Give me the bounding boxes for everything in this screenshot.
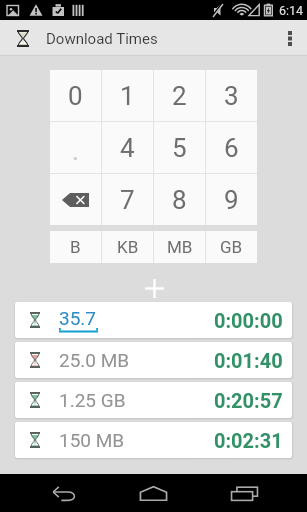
button[interactable]: B	[50, 231, 101, 263]
button[interactable]: 150 MB	[15, 422, 292, 458]
button[interactable]: 0	[50, 70, 101, 121]
button[interactable]: 4	[102, 122, 153, 173]
button[interactable]: 6	[206, 122, 257, 173]
staticText: .	[72, 136, 79, 166]
button[interactable]: Home	[125, 474, 181, 512]
button[interactable]: GB	[206, 231, 257, 263]
button[interactable]: 7	[102, 174, 153, 225]
staticText: 35.7	[59, 307, 97, 329]
staticText: KB	[117, 237, 139, 257]
staticText: 1.25 GB	[59, 389, 126, 411]
staticText: 1	[120, 81, 135, 111]
button[interactable]: KB	[102, 231, 153, 263]
staticText: 3	[224, 81, 239, 111]
staticText: 0:00:00	[214, 309, 283, 332]
staticText: 0	[68, 81, 83, 111]
button[interactable]: 5	[154, 122, 205, 173]
other: Backspace	[62, 193, 89, 207]
button[interactable]: 1	[102, 70, 153, 121]
staticText: 9	[224, 185, 239, 215]
staticText: MB	[167, 237, 193, 257]
staticText: 5	[172, 133, 187, 163]
button[interactable]: Add entry	[140, 274, 168, 302]
staticText: 2	[172, 81, 187, 111]
staticText: GB	[220, 237, 243, 257]
button[interactable]: 9	[206, 174, 257, 225]
staticText: 7	[120, 185, 135, 215]
button[interactable]: 25.0 MB	[15, 342, 292, 378]
button[interactable]: Back	[36, 474, 92, 512]
button[interactable]: 3	[206, 70, 257, 121]
button[interactable]: App icon	[0, 20, 45, 56]
staticText: 4	[120, 133, 135, 163]
button[interactable]: 2	[154, 70, 205, 121]
staticText: 8	[172, 185, 187, 215]
staticText: 150 MB	[59, 429, 125, 451]
staticText: 0:02:31	[214, 429, 283, 452]
button[interactable]: Backspace	[50, 174, 101, 225]
button[interactable]: MB	[154, 231, 205, 263]
staticText: 6:14	[279, 3, 304, 18]
staticText: Download Times	[46, 30, 158, 48]
button[interactable]: 8	[154, 174, 205, 225]
button[interactable]: More options	[272, 20, 307, 56]
button[interactable]: 35.7	[15, 302, 292, 338]
staticText: 0:01:40	[214, 349, 283, 372]
staticText: B	[70, 237, 81, 257]
staticText: 0:20:57	[214, 389, 283, 412]
button[interactable]: Recent apps	[216, 474, 272, 512]
staticText: 6	[224, 133, 239, 163]
button[interactable]: 1.25 GB	[15, 382, 292, 418]
staticText: 25.0 MB	[59, 349, 130, 371]
